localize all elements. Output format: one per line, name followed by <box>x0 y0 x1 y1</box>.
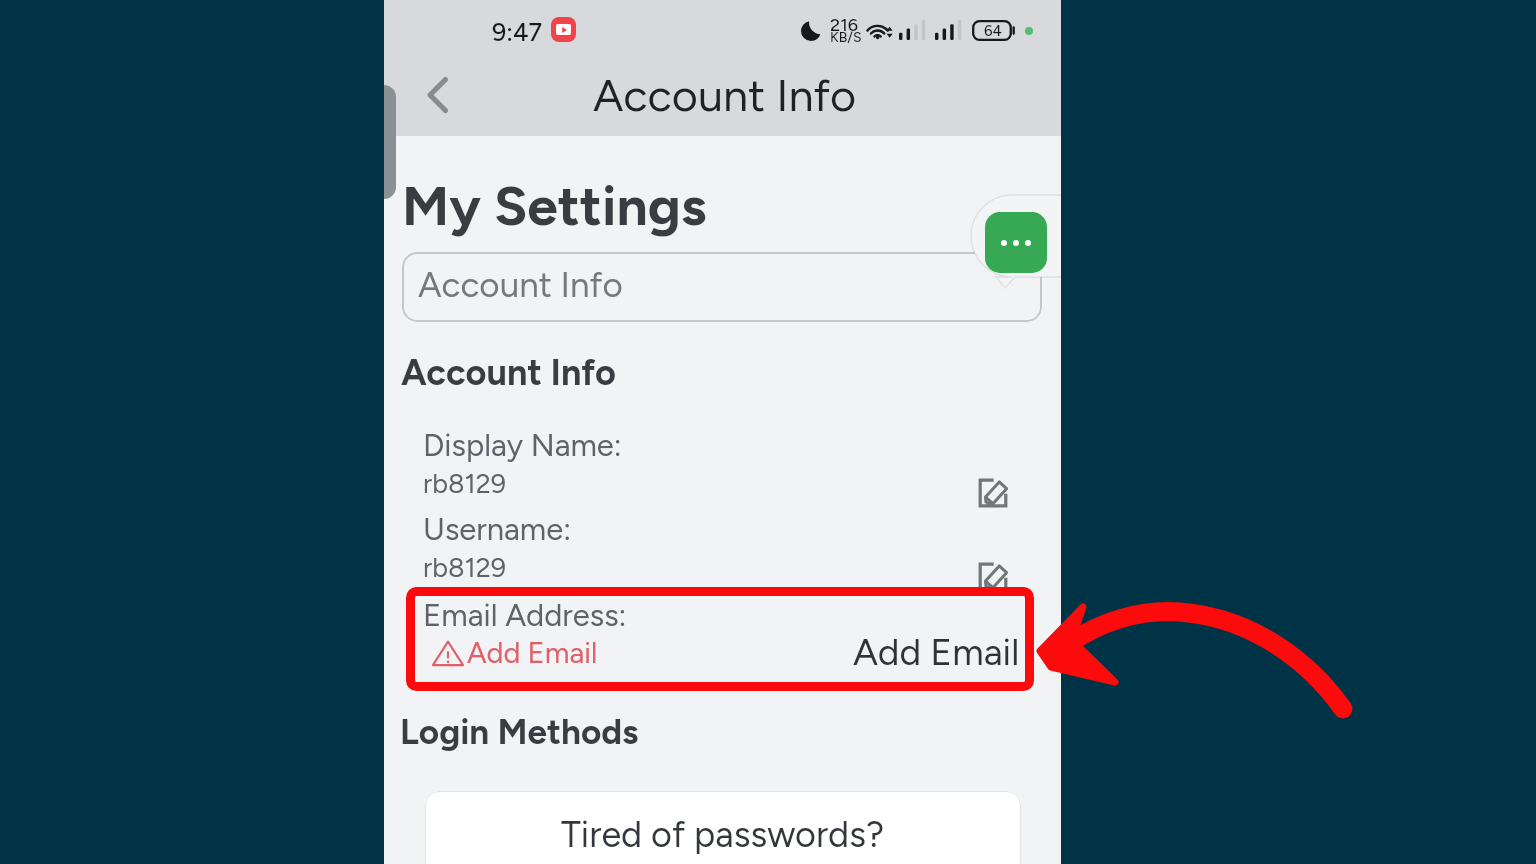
button[interactable]: Add Email <box>846 627 1018 677</box>
button[interactable]: More options <box>985 212 1047 273</box>
staticText: Login Methods <box>400 711 639 753</box>
staticText: Account Info <box>401 351 616 394</box>
staticText: Tired of passwords? <box>561 813 885 856</box>
button[interactable]: Back <box>411 69 463 121</box>
staticText: Account Info <box>593 68 857 122</box>
button[interactable]: Username: <box>384 511 1061 591</box>
staticText: 64 <box>984 22 1002 40</box>
staticText: Display Name: <box>423 427 622 464</box>
button[interactable]: Account Info <box>402 252 1042 322</box>
button[interactable]: Email Address: <box>384 585 1061 690</box>
staticText: rb8129 <box>423 467 507 499</box>
button[interactable]: Display Name: <box>384 427 1061 507</box>
staticText: My Settings <box>402 173 707 239</box>
staticText: Email Address: <box>423 597 627 634</box>
staticText: 9:47 <box>492 17 543 47</box>
button[interactable]: Edit <box>973 473 1013 513</box>
staticText: 216 <box>830 14 858 36</box>
staticText: Username: <box>423 511 572 548</box>
button[interactable]: Tired of passwords? <box>425 791 1021 864</box>
staticText: Add Email <box>853 630 1020 674</box>
staticText: Account Info <box>418 264 623 306</box>
button[interactable]: Edit <box>973 557 1013 597</box>
staticText: Add Email <box>467 635 598 670</box>
staticText: KB/S <box>830 29 862 46</box>
staticText: rb8129 <box>423 551 507 583</box>
